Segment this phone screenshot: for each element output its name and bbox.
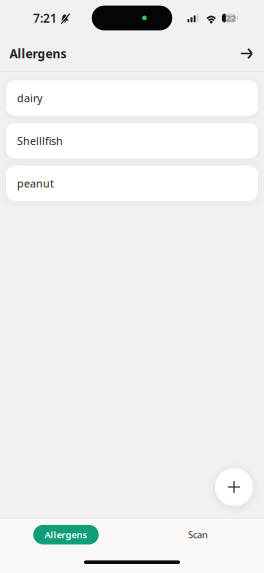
staticText: 22 [226,12,236,24]
button[interactable]: Shelllfish [6,123,258,158]
staticText: 7:21 [33,10,57,26]
staticText: dairy [17,91,42,105]
button[interactable]: Allergens [33,525,99,544]
staticText: Allergens [44,528,87,541]
button[interactable]: peanut [6,166,258,201]
staticText: Scan [188,528,208,541]
button[interactable]: dairy [6,80,258,116]
staticText: peanut [17,176,54,191]
button[interactable]: Scan [165,525,231,544]
staticText: Allergens [9,45,66,61]
button[interactable]: Add allergen [215,468,253,506]
button[interactable]: Continue [232,38,262,68]
staticText: Shelllfish [17,134,63,148]
